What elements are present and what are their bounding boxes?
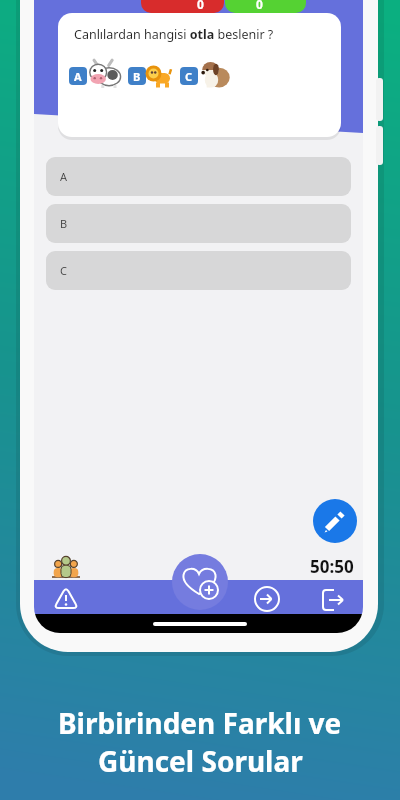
staticText: A: [74, 69, 82, 84]
button[interactable]: B: [46, 204, 351, 243]
staticText: Birbirinden Farklı ve: [58, 704, 342, 742]
staticText: B: [60, 216, 68, 231]
button[interactable]: A: [69, 67, 87, 85]
button[interactable]: [52, 584, 80, 612]
staticText: 0: [256, 0, 263, 12]
staticText: Canlılardan hangisi otla beslenir ?: [74, 26, 274, 43]
staticText: Güncel Sorular: [98, 742, 303, 780]
button[interactable]: [313, 499, 357, 543]
staticText: B: [133, 69, 141, 84]
button[interactable]: [253, 585, 281, 613]
staticText: C: [185, 69, 193, 84]
staticText: C: [60, 263, 67, 278]
button[interactable]: A: [46, 157, 351, 196]
button[interactable]: 0: [225, 0, 306, 13]
staticText: 0: [197, 0, 204, 12]
staticText: A: [60, 169, 68, 184]
button[interactable]: C: [46, 251, 351, 290]
staticText: 50:50: [310, 555, 354, 577]
button[interactable]: C: [180, 67, 198, 85]
button[interactable]: [318, 585, 348, 615]
button[interactable]: 0: [141, 0, 224, 13]
button[interactable]: [172, 554, 228, 610]
button[interactable]: B: [128, 67, 146, 85]
